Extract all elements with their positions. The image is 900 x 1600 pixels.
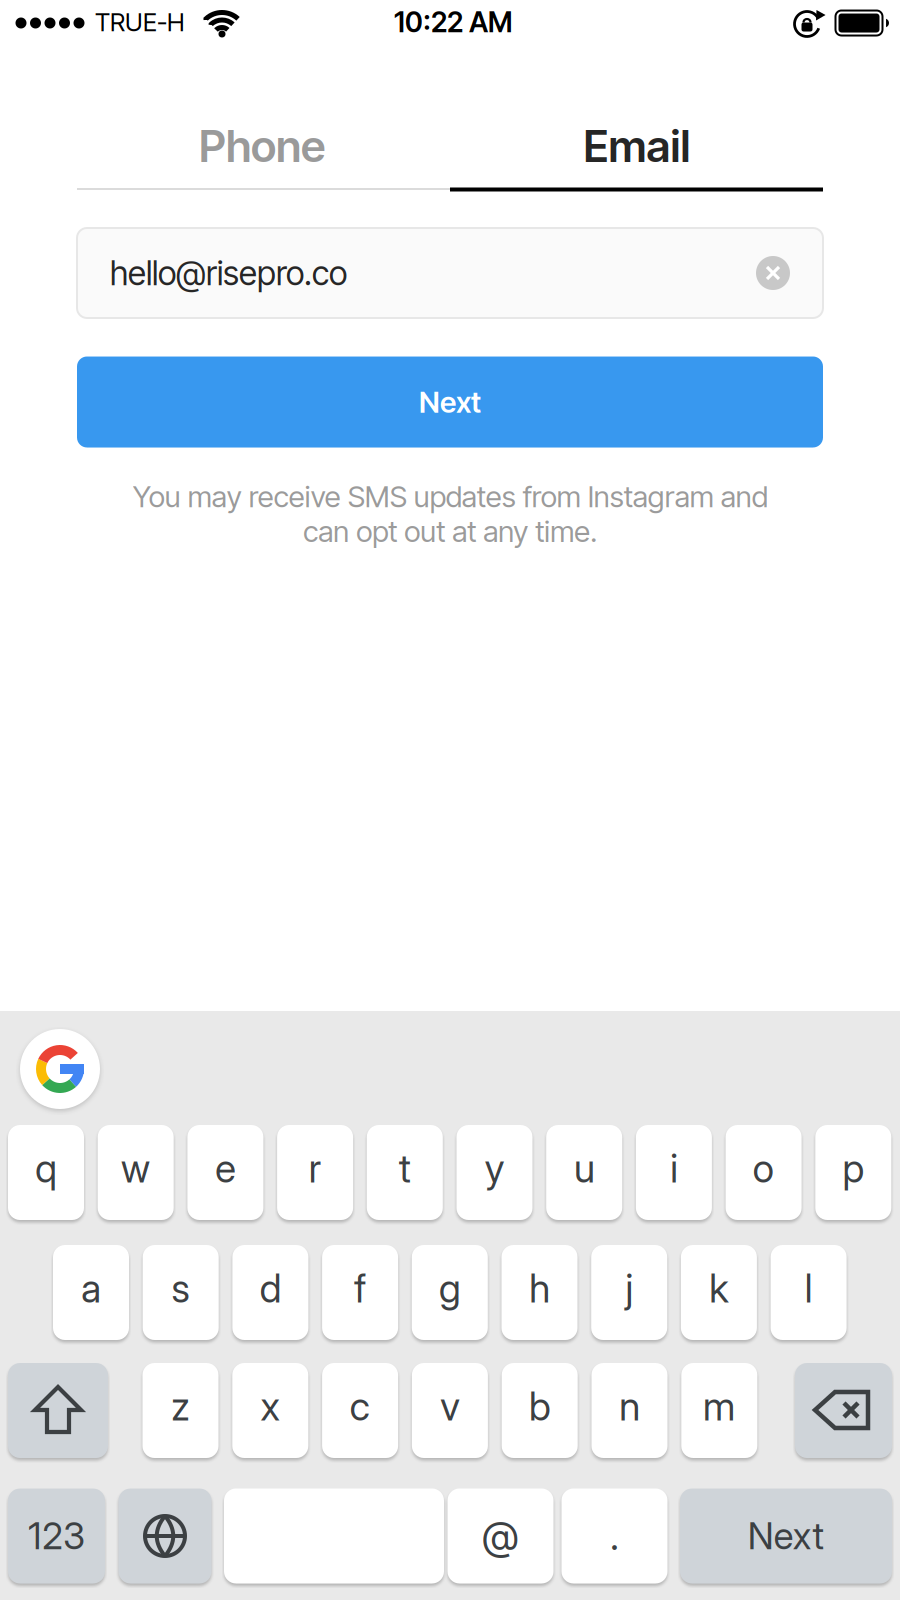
button[interactable]	[8, 1363, 108, 1458]
staticText: v	[440, 1383, 460, 1430]
button[interactable]: o	[726, 1125, 802, 1220]
staticText: u	[574, 1145, 595, 1192]
button[interactable]: n	[591, 1363, 667, 1458]
button[interactable]: w	[98, 1125, 174, 1220]
button[interactable]: x	[232, 1363, 308, 1458]
staticText: o	[753, 1145, 775, 1192]
button[interactable]: y	[456, 1125, 532, 1220]
button[interactable]: l	[771, 1245, 847, 1340]
staticText: g	[439, 1265, 461, 1312]
button[interactable]: 123	[8, 1488, 105, 1583]
staticText: b	[529, 1383, 551, 1430]
button[interactable]: Next	[77, 356, 823, 447]
button[interactable]: b	[502, 1363, 578, 1458]
button[interactable]: r	[277, 1125, 353, 1220]
button[interactable]: d	[232, 1245, 308, 1340]
staticText: m	[703, 1383, 736, 1430]
staticText: i	[670, 1145, 678, 1192]
button[interactable]: @	[447, 1488, 553, 1583]
staticText: e	[215, 1145, 236, 1192]
staticText: Email	[583, 120, 690, 172]
staticText: TRUE-H	[95, 7, 185, 37]
staticText: l	[805, 1265, 813, 1312]
button[interactable]: q	[8, 1125, 84, 1220]
staticText: 10:22 AM	[394, 5, 512, 38]
staticText: t	[399, 1145, 411, 1192]
button[interactable]: z	[142, 1363, 218, 1458]
staticText: Next	[419, 385, 481, 419]
button[interactable]	[20, 1029, 100, 1109]
staticText: s	[171, 1265, 190, 1312]
staticText: x	[260, 1383, 280, 1430]
staticText: 123	[28, 1514, 85, 1558]
button[interactable]	[224, 1488, 444, 1583]
staticText: Next	[747, 1514, 824, 1558]
staticText: z	[171, 1383, 190, 1430]
button[interactable]	[756, 256, 790, 290]
staticText: Phone	[199, 120, 325, 172]
staticText: j	[625, 1265, 633, 1312]
staticText: h	[529, 1265, 550, 1312]
staticText: d	[259, 1265, 281, 1312]
staticText: r	[309, 1145, 322, 1192]
button[interactable]: .	[561, 1488, 667, 1583]
button[interactable]: Next	[680, 1488, 892, 1583]
button[interactable]: i	[636, 1125, 712, 1220]
button[interactable]: Phone	[75, 101, 448, 191]
button[interactable]: c	[322, 1363, 398, 1458]
button[interactable]: j	[591, 1245, 667, 1340]
button[interactable]: s	[143, 1245, 219, 1340]
staticText: y	[484, 1145, 504, 1192]
staticText: k	[709, 1265, 729, 1312]
button[interactable]: e	[187, 1125, 263, 1220]
staticText: n	[619, 1383, 640, 1430]
button[interactable]	[118, 1488, 211, 1583]
staticText: c	[350, 1383, 371, 1430]
staticText: a	[81, 1265, 101, 1312]
button[interactable]	[795, 1363, 892, 1458]
button[interactable]: h	[501, 1245, 577, 1340]
staticText: You may receive SMS updates from Instagr…	[132, 479, 767, 549]
button[interactable]: f	[322, 1245, 398, 1340]
staticText: q	[35, 1145, 57, 1192]
button[interactable]: Email	[450, 101, 823, 191]
button[interactable]: u	[546, 1125, 622, 1220]
button[interactable]: m	[681, 1363, 757, 1458]
staticText: .	[610, 1513, 619, 1559]
button[interactable]: p	[815, 1125, 891, 1220]
staticText: f	[354, 1265, 366, 1312]
button[interactable]: v	[412, 1363, 488, 1458]
staticText: w	[121, 1145, 151, 1192]
button[interactable]: k	[681, 1245, 757, 1340]
staticText: hello@risepro.co	[110, 253, 347, 293]
button[interactable]: a	[53, 1245, 129, 1340]
staticText: @	[481, 1513, 519, 1559]
button[interactable]: g	[412, 1245, 488, 1340]
button[interactable]: t	[367, 1125, 443, 1220]
button[interactable]: hello@risepro.co	[77, 228, 823, 318]
staticText: p	[842, 1145, 864, 1192]
